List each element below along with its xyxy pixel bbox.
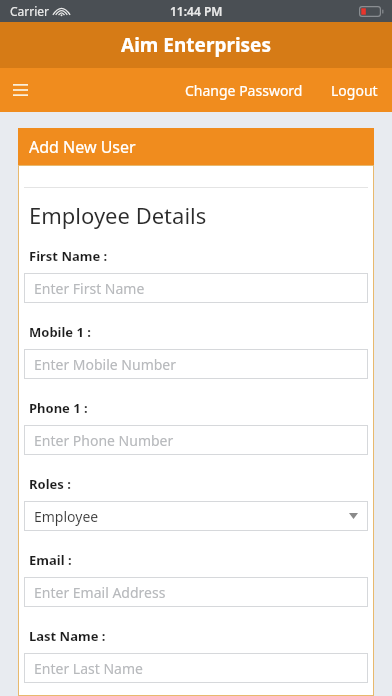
staticText: Enter Last Name [34,659,143,678]
staticText: Employee Details [29,200,207,230]
button[interactable]: Enter Email Address [24,577,368,607]
staticText: Enter First Name [34,279,145,298]
staticText: Email : [29,551,72,569]
staticText: Phone 1 : [29,399,88,417]
staticText: Mobile 1 : [29,323,91,341]
button[interactable]: Enter Last Name [24,653,368,683]
button[interactable]: Menu [0,70,40,110]
button[interactable]: Enter Mobile Number [24,349,368,379]
staticText: Carrier [10,3,50,19]
staticText: Change Password [185,81,303,100]
button[interactable]: Enter First Name [24,273,368,303]
staticText: Aim Enterprises [121,32,271,58]
staticText: Enter Phone Number [34,431,174,450]
staticText: Add New User [29,136,136,158]
staticText: 11:44 PM [170,3,223,19]
button[interactable]: Enter Phone Number [24,425,368,455]
staticText: Employee [34,507,99,526]
staticText: Logout [331,81,378,100]
staticText: Enter Email Address [34,583,166,602]
staticText: Last Name : [29,627,106,645]
staticText: Roles : [29,475,71,493]
staticText: First Name : [29,247,108,265]
button[interactable]: Logout [325,73,384,108]
button[interactable]: Employee [24,501,368,531]
button[interactable]: Change Password [179,73,309,108]
staticText: Enter Mobile Number [34,355,177,374]
